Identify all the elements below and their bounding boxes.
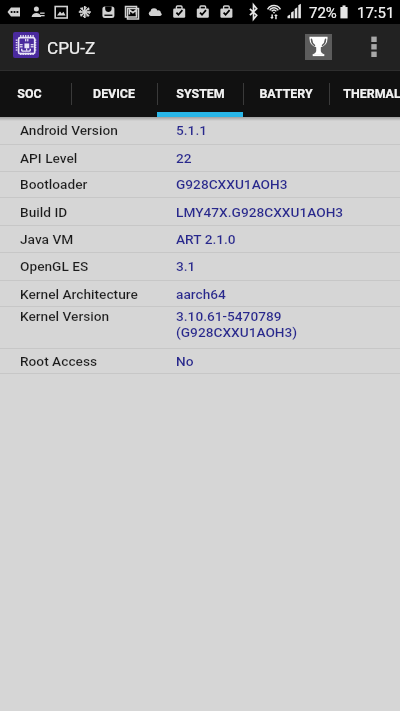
staticText: Android Version — [20, 122, 118, 138]
staticText: OpenGL ES — [20, 258, 89, 274]
staticText: 22 — [176, 150, 192, 166]
staticText: 3.1 — [176, 258, 196, 274]
button[interactable]: DEVICE — [71, 71, 157, 117]
button[interactable]: CPU-Z app icon — [13, 32, 39, 58]
staticText: (G928CXXU1AOH3) — [176, 324, 298, 340]
staticText: ART 2.1.0 — [176, 231, 236, 247]
button[interactable]: Kernel Architecture — [0, 281, 400, 307]
staticText: G928CXXU1AOH3 — [176, 176, 288, 192]
staticText: 5.1.1 — [176, 122, 207, 138]
button[interactable]: Kernel Version — [0, 307, 400, 349]
staticText: LMY47X.G928CXXU1AOH3 — [176, 204, 344, 220]
staticText: 3.10.61-5470789 — [176, 308, 282, 324]
button[interactable]: Root Access — [0, 349, 400, 374]
button[interactable]: SOC — [0, 71, 72, 117]
staticText: 72% — [309, 4, 337, 22]
button[interactable]: More options — [360, 24, 388, 71]
staticText: BATTERY — [259, 86, 313, 101]
staticText: THERMAL — [343, 86, 400, 101]
button[interactable]: OpenGL ES — [0, 253, 400, 281]
staticText: Kernel Architecture — [20, 286, 138, 302]
button[interactable]: Build ID — [0, 199, 400, 226]
button[interactable]: Java VM — [0, 226, 400, 253]
button[interactable]: Bootloader — [0, 171, 400, 198]
button[interactable]: SYSTEM — [157, 71, 243, 117]
staticText: API Level — [20, 150, 78, 166]
staticText: No — [176, 353, 194, 369]
staticText: Build ID — [20, 204, 68, 220]
staticText: aarch64 — [176, 286, 226, 302]
staticText: SOC — [17, 86, 42, 101]
button[interactable]: API Level — [0, 145, 400, 172]
staticText: Bootloader — [20, 176, 88, 192]
staticText: Kernel Version — [20, 308, 110, 324]
staticText: DEVICE — [93, 86, 135, 101]
staticText: Root Access — [20, 353, 98, 369]
staticText: 17:51 — [357, 4, 395, 22]
button[interactable]: THERMAL — [329, 71, 400, 117]
button[interactable]: Android Version — [0, 117, 400, 145]
staticText: Java VM — [20, 231, 74, 247]
staticText: CPU-Z — [47, 38, 96, 58]
button[interactable]: BATTERY — [243, 71, 329, 117]
staticText: SYSTEM — [176, 86, 225, 101]
button[interactable]: Benchmark — [305, 34, 332, 60]
